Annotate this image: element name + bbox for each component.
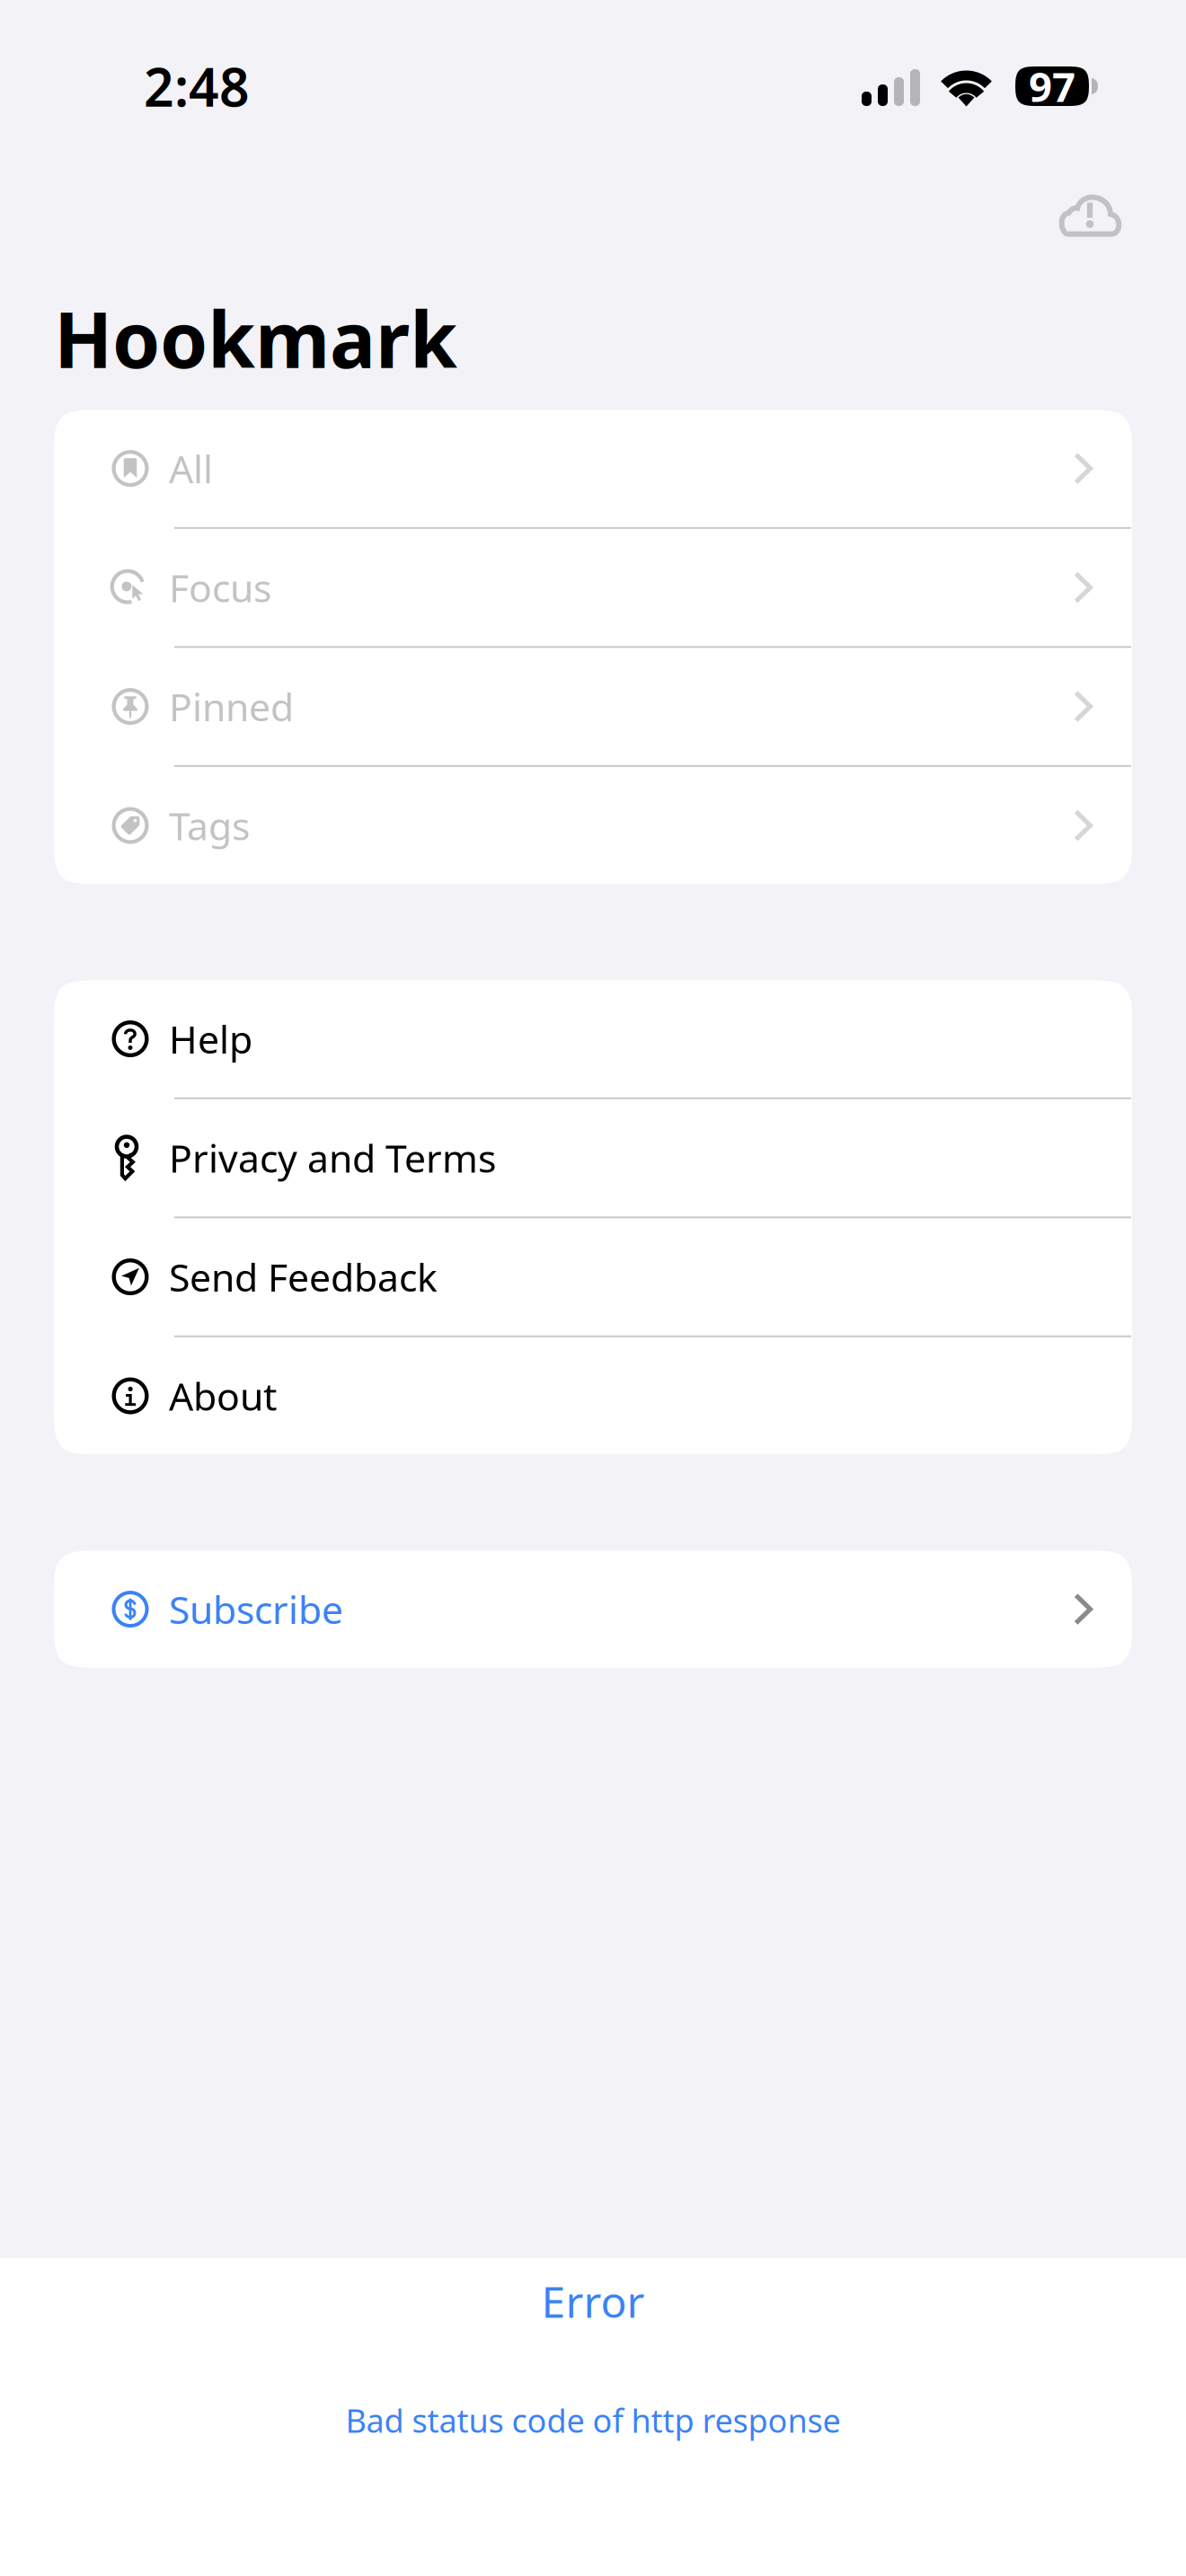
button[interactable]: Privacy and Terms — [54, 1099, 1132, 1216]
staticText: All — [169, 443, 213, 494]
button[interactable]: All — [54, 410, 1132, 527]
button[interactable]: Subscribe — [54, 1551, 1132, 1668]
staticText: Subscribe — [169, 1584, 343, 1635]
button[interactable]: iCloud sync error — [1054, 187, 1186, 237]
staticText: Help — [169, 1013, 252, 1064]
staticText: Tags — [169, 800, 250, 851]
staticText: Bad status code of http response — [345, 2399, 841, 2442]
button[interactable]: Pinned — [54, 648, 1132, 765]
button[interactable]: Send Feedback — [54, 1218, 1132, 1335]
button[interactable]: Focus — [54, 529, 1132, 646]
button[interactable]: About — [54, 1337, 1132, 1454]
staticText: Focus — [169, 562, 271, 613]
staticText: Hookmark — [54, 287, 457, 389]
staticText: About — [169, 1370, 277, 1421]
staticText: Error — [541, 2273, 645, 2330]
staticText: 2:48 — [144, 51, 250, 121]
staticText: 97 — [1029, 59, 1075, 113]
button[interactable]: Help — [54, 980, 1132, 1097]
staticText: Pinned — [169, 681, 294, 732]
staticText: Privacy and Terms — [169, 1132, 496, 1183]
button[interactable]: Tags — [54, 767, 1132, 884]
staticText: Send Feedback — [169, 1251, 438, 1302]
